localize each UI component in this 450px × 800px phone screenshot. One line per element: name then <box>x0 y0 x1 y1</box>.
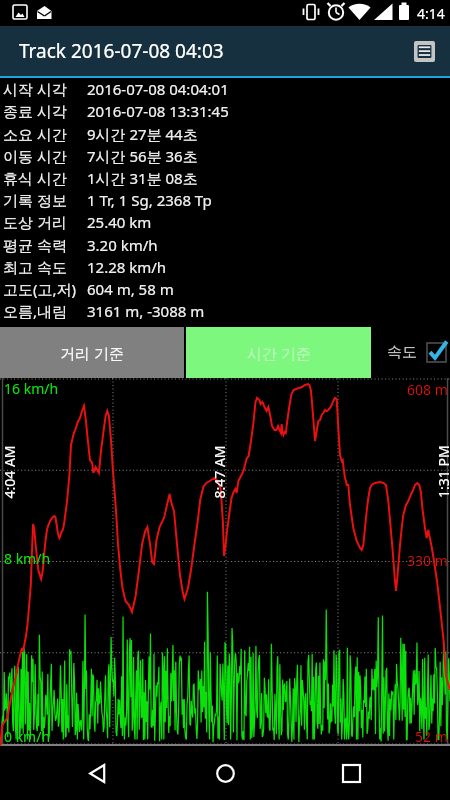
staticText: 7시간 56분 36초 <box>87 146 198 166</box>
button[interactable]: 거리 기준 <box>0 327 184 378</box>
staticText: 0 km/h <box>4 727 51 746</box>
staticText: 9시간 27분 44초 <box>87 124 198 144</box>
staticText: 시작 시각 <box>3 79 87 99</box>
staticText: 8:47 AM <box>209 444 228 498</box>
staticText: 2016-07-08 04:04:01 <box>87 79 229 99</box>
staticText: 최고 속도 <box>3 257 87 277</box>
staticText: 8 km/h <box>4 549 51 568</box>
staticText: 고도(고,저) <box>3 279 87 299</box>
staticText: 오름,내림 <box>3 301 87 321</box>
staticText: 소요 시간 <box>3 124 87 144</box>
staticText: 거리 기준 <box>60 343 124 363</box>
staticText: 2016-07-08 13:31:45 <box>87 101 229 121</box>
staticText: 1 Tr, 1 Sg, 2368 Tp <box>87 190 212 210</box>
staticText: 기록 정보 <box>3 190 87 210</box>
staticText: 16 km/h <box>4 379 59 398</box>
button[interactable]: Menu <box>407 34 441 68</box>
button[interactable]: Back <box>78 753 118 793</box>
button[interactable]: Home <box>205 753 245 793</box>
staticText: 12.28 km/h <box>87 257 167 277</box>
staticText: 속도 <box>387 343 417 362</box>
other: Speed toggle <box>427 343 446 362</box>
staticText: 330 m <box>407 551 448 570</box>
staticText: 도상 거리 <box>3 212 87 232</box>
staticText: 1시간 31분 08초 <box>87 168 198 188</box>
button[interactable]: 속도 <box>387 343 446 362</box>
staticText: 1:31 PM <box>434 445 450 498</box>
staticText: 4:14 <box>417 4 445 23</box>
staticText: 3.20 km/h <box>87 235 158 255</box>
staticText: 평균 속력 <box>3 235 87 255</box>
staticText: 608 m <box>407 380 448 399</box>
button[interactable]: 시간 기준 <box>186 327 371 378</box>
staticText: 이동 시간 <box>3 146 87 166</box>
button[interactable]: Recents <box>331 753 371 793</box>
staticText: 4:04 AM <box>0 444 18 498</box>
staticText: 휴식 시간 <box>3 168 87 188</box>
staticText: 25.40 km <box>87 212 152 232</box>
staticText: 시간 기준 <box>247 343 311 363</box>
staticText: 604 m, 58 m <box>87 279 174 299</box>
staticText: 종료 시각 <box>3 101 87 121</box>
staticText: 3161 m, -3088 m <box>87 301 205 321</box>
staticText: Track 2016-07-08 04:03 <box>19 38 224 64</box>
staticText: 52 m <box>415 727 448 746</box>
